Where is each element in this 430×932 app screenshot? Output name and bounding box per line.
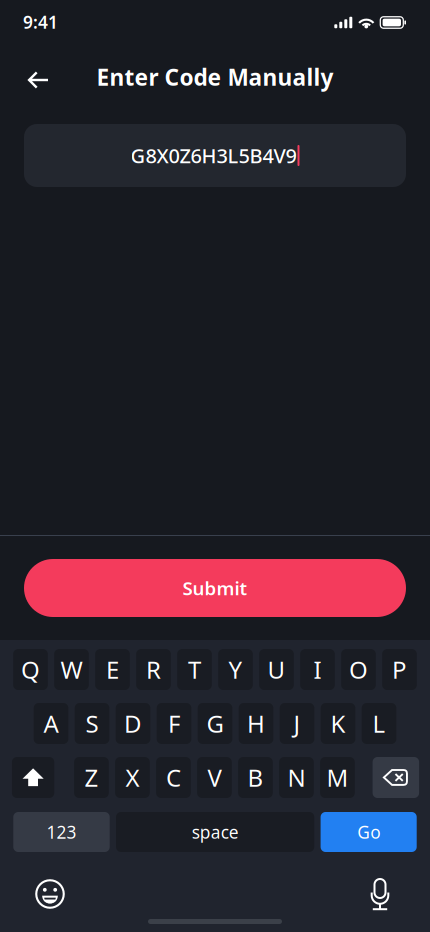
staticText: I bbox=[313, 654, 321, 685]
button[interactable]: T bbox=[177, 649, 212, 690]
staticText: P bbox=[392, 654, 407, 685]
staticText: O bbox=[349, 654, 368, 685]
staticText: H bbox=[247, 708, 265, 739]
button[interactable]: K bbox=[321, 703, 355, 744]
button[interactable]: V bbox=[197, 757, 232, 798]
button[interactable]: W bbox=[54, 649, 89, 690]
button[interactable]: L bbox=[362, 703, 396, 744]
staticText: F bbox=[168, 708, 180, 739]
button[interactable]: C bbox=[156, 757, 191, 798]
staticText: R bbox=[146, 654, 161, 685]
button[interactable]: Shift bbox=[12, 757, 54, 798]
button[interactable]: M bbox=[320, 757, 355, 798]
button[interactable]: E bbox=[95, 649, 130, 690]
button[interactable]: S bbox=[75, 703, 109, 744]
button[interactable]: Go bbox=[321, 812, 417, 852]
staticText: Z bbox=[84, 762, 98, 793]
staticText: M bbox=[326, 762, 348, 793]
staticText: W bbox=[60, 654, 82, 685]
button[interactable]: space bbox=[116, 812, 314, 852]
staticText: V bbox=[207, 762, 221, 793]
staticText: L bbox=[372, 708, 385, 739]
button[interactable]: R bbox=[136, 649, 171, 690]
staticText: S bbox=[85, 708, 98, 739]
button[interactable]: D bbox=[116, 703, 150, 744]
staticText: C bbox=[166, 762, 181, 793]
button[interactable]: A bbox=[34, 703, 68, 744]
staticText: 9:41 bbox=[23, 10, 58, 33]
staticText: A bbox=[43, 708, 58, 739]
button[interactable]: N bbox=[279, 757, 314, 798]
button[interactable]: G8X0Z6H3L5B4V9 bbox=[24, 124, 406, 187]
button[interactable]: Back bbox=[15, 55, 59, 99]
staticText: N bbox=[287, 762, 305, 793]
staticText: Submit bbox=[182, 576, 247, 600]
staticText: J bbox=[293, 708, 300, 739]
staticText: X bbox=[125, 762, 139, 793]
button[interactable]: J bbox=[280, 703, 314, 744]
button[interactable]: X bbox=[115, 757, 150, 798]
staticText: Enter Code Manually bbox=[96, 62, 333, 92]
staticText: space bbox=[192, 820, 239, 843]
staticText: Q bbox=[21, 654, 40, 685]
staticText: E bbox=[106, 654, 119, 685]
staticText: Go bbox=[357, 820, 380, 843]
button[interactable]: F bbox=[157, 703, 191, 744]
staticText: D bbox=[124, 708, 142, 739]
staticText: K bbox=[330, 708, 345, 739]
staticText: 123 bbox=[46, 820, 76, 843]
staticText: G bbox=[206, 708, 223, 739]
button[interactable]: Backspace bbox=[373, 757, 419, 798]
staticText: U bbox=[267, 654, 285, 685]
button[interactable]: Dictation bbox=[358, 872, 402, 916]
staticText: G8X0Z6H3L5B4V9 bbox=[130, 142, 296, 169]
button[interactable]: Emoji keyboard bbox=[28, 872, 72, 916]
button[interactable]: P bbox=[382, 649, 417, 690]
button[interactable]: H bbox=[239, 703, 273, 744]
button[interactable]: Q bbox=[13, 649, 48, 690]
staticText: T bbox=[188, 654, 201, 685]
staticText: B bbox=[247, 762, 263, 793]
button[interactable]: O bbox=[341, 649, 376, 690]
button[interactable]: U bbox=[259, 649, 294, 690]
button[interactable]: 123 bbox=[13, 812, 110, 852]
button[interactable]: I bbox=[300, 649, 335, 690]
button[interactable]: G bbox=[198, 703, 232, 744]
button[interactable]: Submit bbox=[24, 559, 406, 617]
button[interactable]: Z bbox=[74, 757, 109, 798]
button[interactable]: Y bbox=[218, 649, 253, 690]
staticText: Y bbox=[228, 654, 242, 685]
button[interactable]: B bbox=[238, 757, 273, 798]
